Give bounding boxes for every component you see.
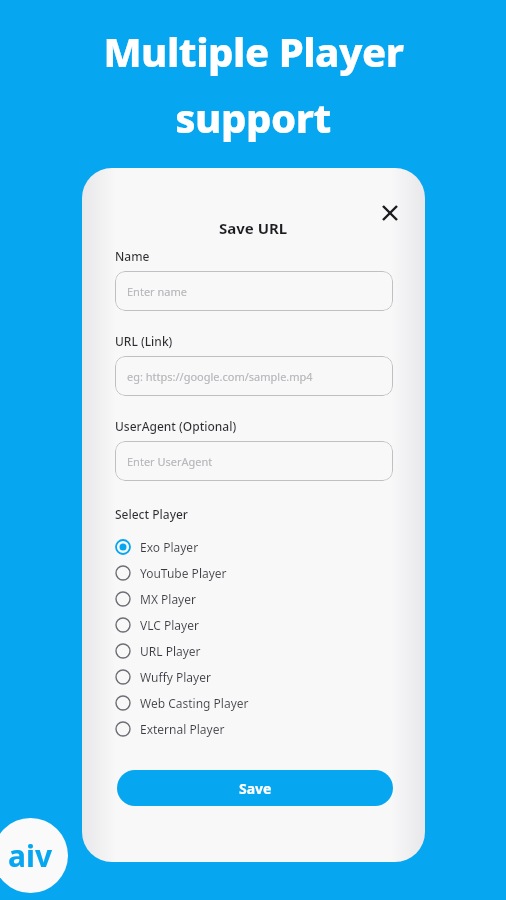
- staticText: Enter name: [127, 284, 187, 299]
- staticText: Name: [115, 248, 150, 264]
- staticText: UserAgent (Optional): [115, 418, 237, 434]
- staticText: Web Casting Player: [140, 695, 249, 711]
- staticText: URL (Link): [115, 333, 173, 349]
- staticText: aiv: [8, 835, 53, 876]
- button[interactable]: Enter UserAgent: [115, 441, 393, 481]
- staticText: URL Player: [140, 643, 201, 659]
- staticText: eg: https://google.com/sample.mp4: [127, 369, 313, 384]
- button[interactable]: Close: [372, 195, 408, 231]
- button[interactable]: YouTube Player: [115, 560, 393, 586]
- button[interactable]: External Player: [115, 716, 393, 742]
- staticText: Multiple Player: [103, 24, 404, 78]
- staticText: Enter UserAgent: [127, 454, 213, 469]
- staticText: Save URL: [219, 218, 288, 238]
- staticText: support: [175, 90, 331, 144]
- button[interactable]: aiv logo: [0, 818, 68, 893]
- staticText: External Player: [140, 721, 225, 737]
- staticText: Save: [239, 779, 272, 798]
- staticText: Exo Player: [140, 539, 199, 555]
- button[interactable]: VLC Player: [115, 612, 393, 638]
- button[interactable]: Web Casting Player: [115, 690, 393, 716]
- staticText: VLC Player: [140, 617, 199, 633]
- button[interactable]: MX Player: [115, 586, 393, 612]
- button[interactable]: Exo Player: [115, 534, 393, 560]
- staticText: MX Player: [140, 591, 196, 607]
- staticText: YouTube Player: [140, 565, 227, 581]
- staticText: Wuffy Player: [140, 669, 211, 685]
- staticText: Select Player: [115, 506, 188, 522]
- button[interactable]: Enter name: [115, 271, 393, 311]
- button[interactable]: eg: https://google.com/sample.mp4: [115, 356, 393, 396]
- button[interactable]: Save: [117, 770, 393, 806]
- button[interactable]: Wuffy Player: [115, 664, 393, 690]
- button[interactable]: URL Player: [115, 638, 393, 664]
